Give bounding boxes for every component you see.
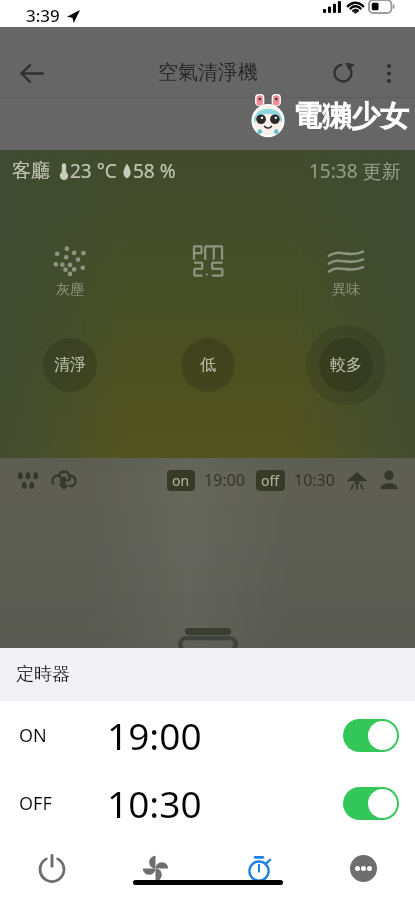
staticText: 清淨 — [54, 355, 86, 375]
button[interactable]: More — [311, 840, 415, 896]
staticText: 低 — [200, 355, 216, 375]
staticText: OFF — [19, 791, 52, 816]
staticText: 15:38 更新 — [309, 158, 401, 184]
staticText: 10:30 — [294, 469, 335, 491]
staticText: 較多 — [330, 355, 362, 375]
staticText: 電獺少女 — [293, 98, 409, 135]
staticText: off — [261, 471, 280, 490]
button[interactable] — [343, 787, 399, 820]
staticText: 58 % — [133, 158, 176, 184]
staticText: 灰塵 — [56, 281, 84, 299]
button[interactable]: 低 — [166, 323, 250, 407]
button[interactable] — [343, 719, 399, 752]
button[interactable]: 較多 — [304, 323, 388, 407]
button[interactable]: Timer — [207, 840, 311, 896]
button[interactable]: Back — [7, 49, 55, 97]
staticText: 定時器 — [16, 663, 70, 686]
staticText: 19:00 — [204, 469, 245, 491]
button[interactable]: ON — [0, 701, 415, 769]
button[interactable]: Power — [0, 840, 103, 896]
staticText: 空氣清淨機 — [158, 60, 258, 85]
button[interactable]: 清淨 — [28, 323, 112, 407]
staticText: 10:30 — [107, 778, 202, 828]
button[interactable]: Refresh — [319, 49, 367, 97]
staticText: 19:00 — [107, 710, 202, 760]
button[interactable]: OFF — [0, 769, 415, 837]
staticText: 23 °C — [70, 158, 117, 184]
button[interactable]: Fan mode — [103, 840, 207, 896]
staticText: 異味 — [332, 281, 360, 299]
staticText: ON — [19, 723, 47, 748]
staticText: 3:39 — [26, 4, 60, 27]
button[interactable]: More options — [367, 51, 411, 95]
staticText: on — [172, 471, 190, 490]
staticText: 客廳 — [12, 159, 50, 183]
